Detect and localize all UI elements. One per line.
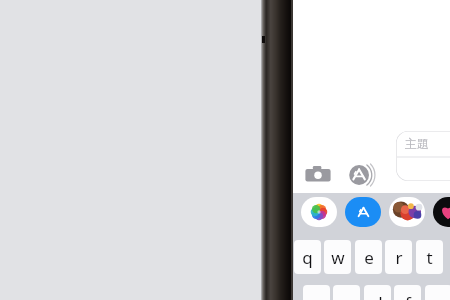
staticText: q: [302, 246, 313, 269]
staticText: 主題: [405, 136, 429, 151]
button[interactable]: g: [425, 285, 450, 300]
button[interactable]: Camera: [303, 160, 333, 190]
button[interactable]: Photos: [301, 197, 337, 227]
button[interactable]: t: [416, 240, 443, 274]
button[interactable]: q: [294, 240, 321, 274]
button[interactable]: f: [394, 285, 421, 300]
staticText: t: [426, 246, 433, 269]
staticText: f: [405, 291, 411, 300]
button[interactable]: r: [385, 240, 412, 274]
button[interactable]: Digital Touch: [433, 197, 450, 227]
button[interactable]: e: [355, 240, 382, 274]
button[interactable]: a: [303, 285, 330, 300]
button[interactable]: App Store: [345, 160, 375, 190]
button[interactable]: s: [333, 285, 360, 300]
staticText: e: [364, 246, 374, 269]
button[interactable]: Photo sticker: [389, 197, 425, 227]
staticText: r: [395, 246, 403, 269]
staticText: d: [372, 291, 383, 300]
button[interactable]: w: [324, 240, 351, 274]
button[interactable]: App Store: [345, 197, 381, 227]
button[interactable]: 主題: [396, 131, 450, 181]
button[interactable]: d: [364, 285, 391, 300]
staticText: w: [331, 246, 345, 269]
